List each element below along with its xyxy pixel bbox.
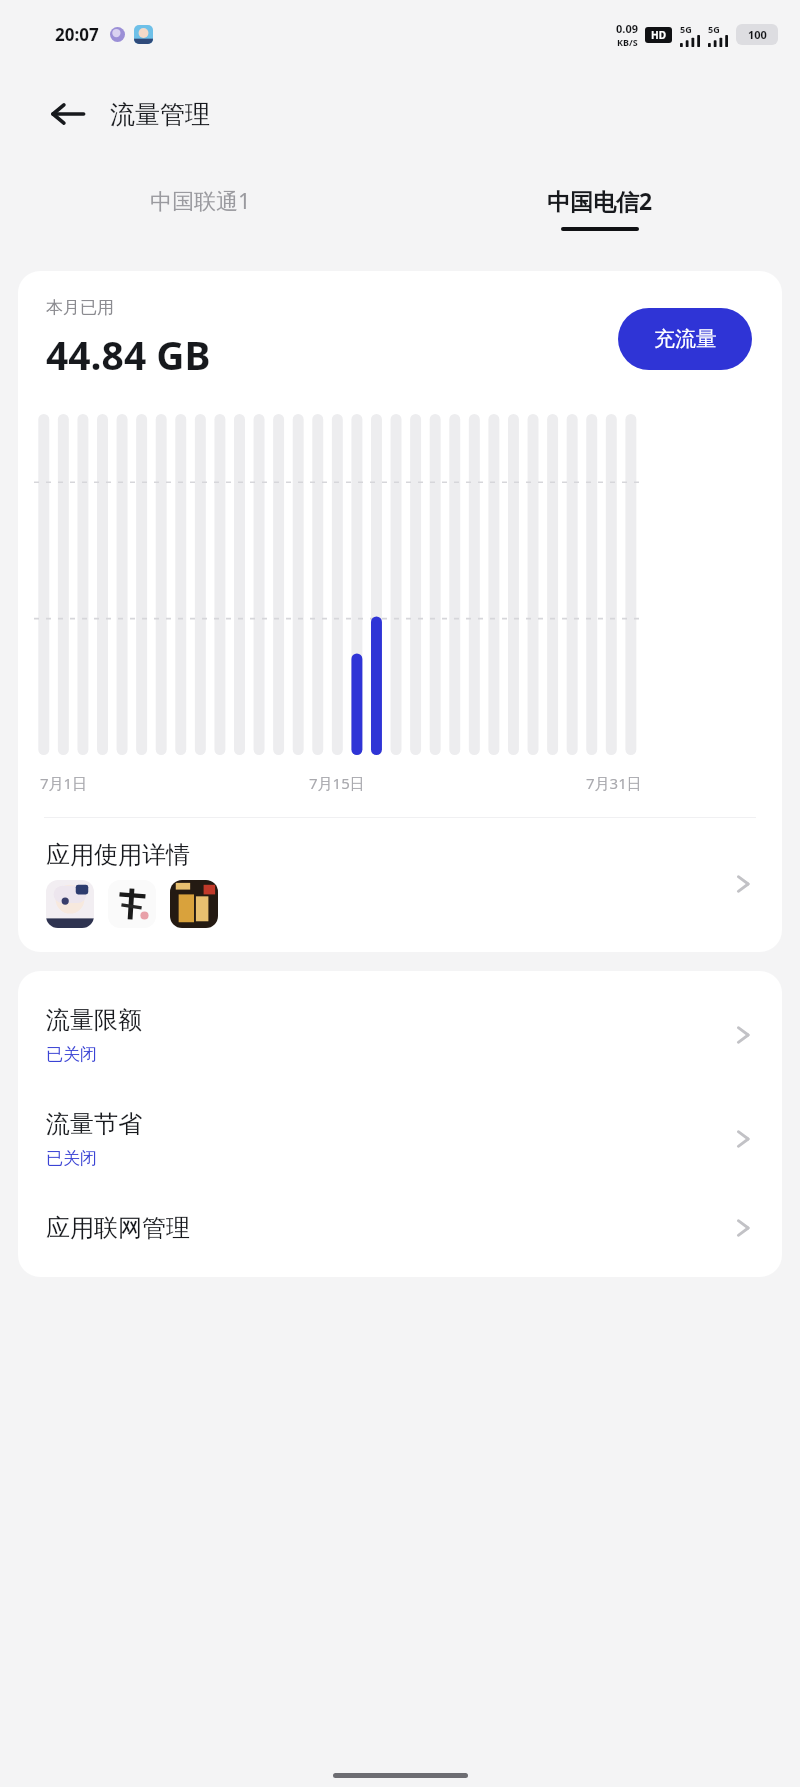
- staticText: 中国联通1: [150, 185, 251, 215]
- staticText: 已关闭: [46, 1044, 97, 1065]
- staticText: 本月已用: [46, 297, 114, 318]
- staticText: 44.84 GB: [46, 328, 211, 381]
- staticText: 0.09: [616, 21, 638, 36]
- staticText: KB/S: [617, 36, 638, 48]
- button[interactable]: 应用联网管理: [18, 1191, 782, 1265]
- button[interactable]: 中国联通1: [0, 160, 400, 256]
- staticText: 已关闭: [46, 1148, 97, 1169]
- button[interactable]: 流量限额: [18, 983, 782, 1087]
- staticText: 7月1日: [40, 773, 88, 793]
- staticText: 5G: [680, 23, 692, 35]
- staticText: 20:07: [55, 23, 99, 46]
- button[interactable]: 充流量: [618, 308, 752, 370]
- staticText: 流量节省: [46, 1109, 142, 1139]
- staticText: 应用联网管理: [46, 1213, 190, 1243]
- staticText: 5G: [708, 23, 720, 35]
- staticText: 7月15日: [309, 773, 365, 793]
- staticText: HD: [651, 28, 666, 42]
- staticText: 中国电信2: [547, 185, 653, 216]
- staticText: 流量限额: [46, 1005, 142, 1035]
- button[interactable]: 应用使用详情: [18, 818, 782, 952]
- staticText: 流量管理: [110, 99, 210, 130]
- button[interactable]: 中国电信2: [400, 160, 800, 256]
- staticText: 充流量: [654, 326, 717, 352]
- button[interactable]: Back: [44, 90, 92, 138]
- staticText: 100: [748, 27, 767, 42]
- staticText: 应用使用详情: [46, 840, 190, 870]
- button[interactable]: 流量节省: [18, 1087, 782, 1191]
- staticText: 7月31日: [586, 773, 642, 793]
